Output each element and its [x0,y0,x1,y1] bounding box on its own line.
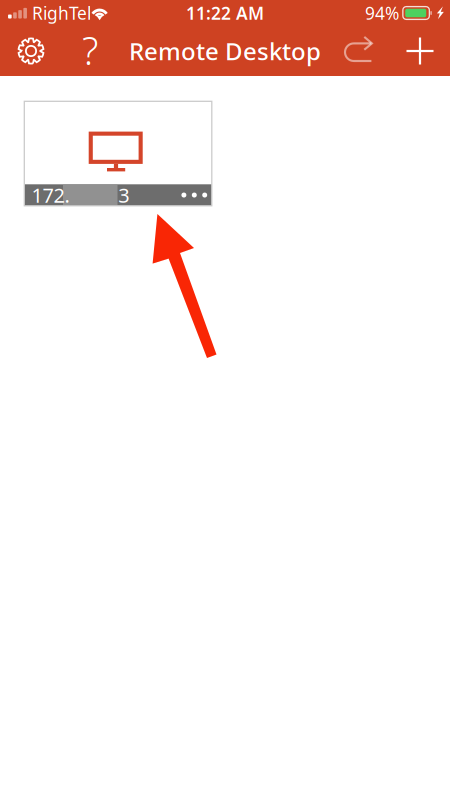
staticText: Remote Desktop [129,35,321,67]
button[interactable]: Add [398,26,442,76]
button[interactable]: 172. [24,101,212,206]
staticText: ? [82,24,98,76]
staticText: 3 [118,182,129,208]
button[interactable]: Refresh [339,26,383,76]
staticText: 11:22 AM [186,1,264,24]
staticText: 172. [31,182,69,208]
button[interactable]: Help [70,26,110,76]
staticText: 94% [365,1,399,24]
staticText: RighTel [32,1,91,24]
button[interactable]: Settings [9,26,53,76]
